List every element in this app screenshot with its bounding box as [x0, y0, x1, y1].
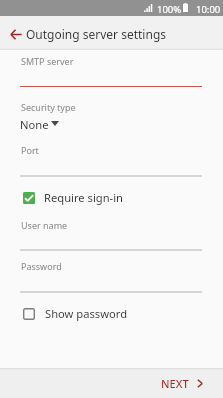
button[interactable]: Show password [18, 303, 168, 323]
staticText: SMTP server [21, 55, 74, 67]
staticText: Outgoing server settings [26, 26, 167, 42]
staticText: Show password [45, 306, 128, 321]
staticText: Password [21, 260, 62, 272]
staticText: 100% [157, 3, 182, 16]
staticText: None [20, 117, 49, 132]
staticText: NEXT [161, 376, 189, 391]
staticText: 10:00 [196, 3, 221, 16]
staticText: Port [21, 144, 39, 156]
staticText: User name [21, 219, 68, 231]
staticText: Security type [21, 101, 76, 113]
button[interactable]: Require sign-in [18, 187, 168, 207]
button[interactable]: Back [4, 22, 28, 46]
button[interactable]: None [20, 115, 62, 131]
button[interactable]: NEXT [147, 368, 223, 398]
staticText: Require sign-in [44, 190, 124, 205]
